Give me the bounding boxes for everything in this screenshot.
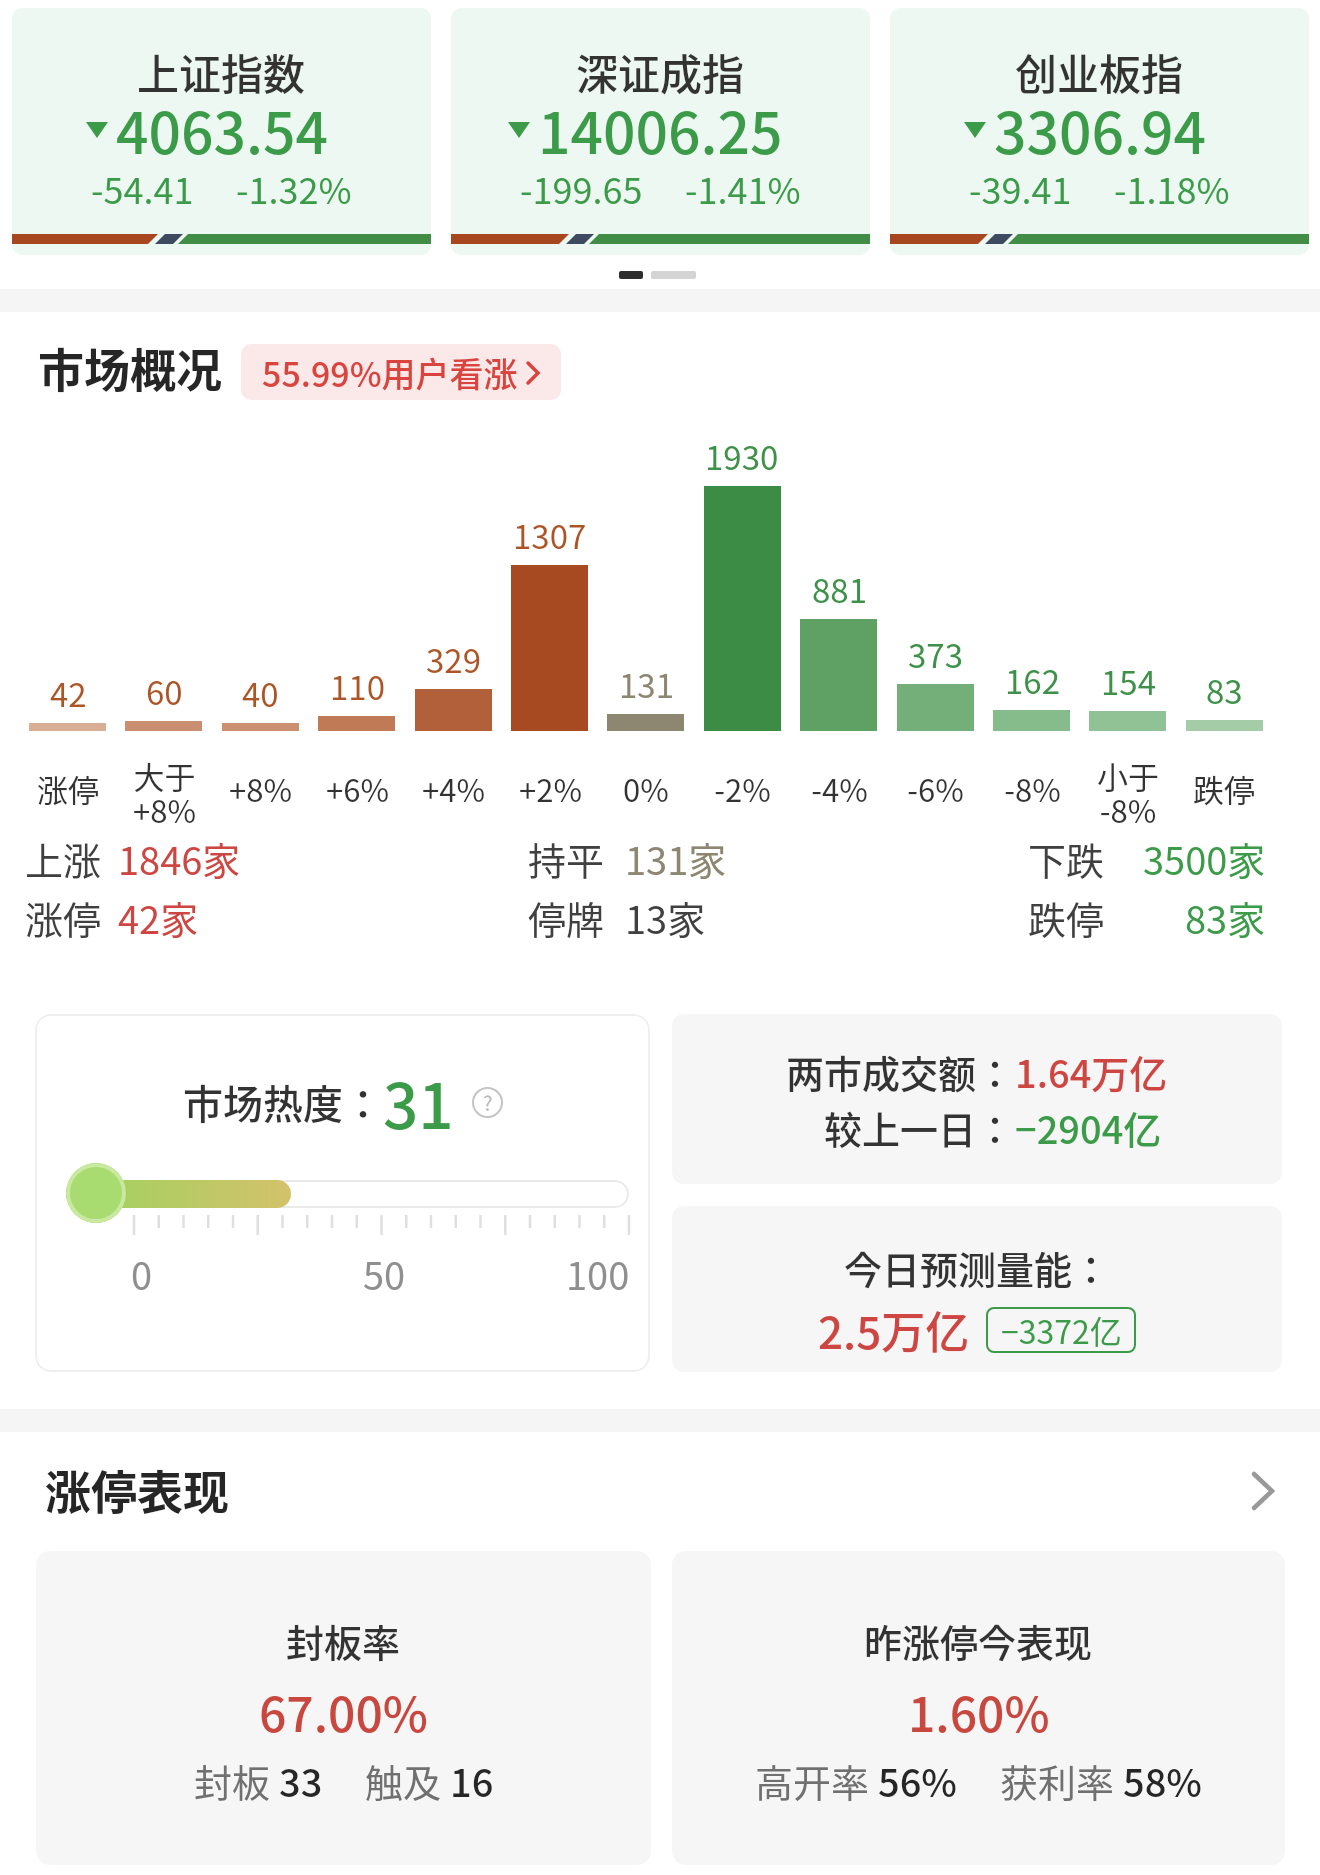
staticText: 跌停	[1028, 890, 1105, 945]
staticText: 0%	[623, 766, 669, 811]
staticText: 3500家	[1143, 831, 1266, 886]
staticText: 封板	[194, 1753, 279, 1808]
staticText: 上涨	[25, 831, 102, 886]
staticText: 13家	[625, 890, 706, 945]
staticText: 373	[908, 630, 963, 678]
staticText: 40	[242, 669, 279, 717]
staticText: 83家	[1185, 890, 1266, 945]
staticText: 封板率	[286, 1613, 401, 1668]
staticText: 162	[1005, 656, 1060, 704]
staticText: 42	[50, 669, 87, 717]
staticText: 停牌	[528, 890, 605, 945]
staticText: 60	[146, 667, 183, 715]
staticText: 高开率	[755, 1753, 878, 1808]
button[interactable]: 封板率	[36, 1551, 651, 1865]
staticText: 131	[619, 660, 674, 708]
staticText: 881	[812, 565, 867, 613]
button[interactable]: 深证成指	[451, 8, 870, 255]
staticText: 154	[1101, 657, 1156, 705]
staticText: 83	[1206, 666, 1243, 714]
staticText: 55.99%用户看涨	[262, 348, 518, 397]
staticText: 获利率	[1000, 1753, 1123, 1808]
staticText: 0	[131, 1246, 153, 1301]
staticText: 3306.94	[994, 88, 1206, 171]
staticText: 31	[383, 1057, 454, 1147]
staticText: 涨停	[25, 890, 102, 945]
staticText: 110	[330, 662, 385, 710]
staticText: 两市成交额：	[786, 1044, 1015, 1099]
staticText: +2%	[519, 766, 582, 811]
staticText: 市场概况	[38, 334, 222, 400]
staticText: -1.18%	[1114, 162, 1230, 214]
button[interactable]	[1252, 1472, 1274, 1510]
staticText: 14006.25	[538, 88, 783, 171]
staticText: -2%	[714, 766, 771, 811]
staticText: 小于 -8%	[1097, 753, 1159, 823]
staticText: 跌停	[1193, 766, 1255, 811]
staticText: -8%	[1004, 766, 1061, 811]
staticText: +6%	[326, 766, 389, 811]
staticText: 56%	[878, 1753, 958, 1808]
staticText: 触及	[365, 1753, 450, 1808]
staticText: 1930	[705, 432, 779, 480]
button[interactable]: 今日预测量能：	[672, 1206, 1282, 1372]
staticText: 下跌	[1028, 831, 1105, 886]
button[interactable]: 上证指数	[12, 8, 431, 255]
staticText: 329	[426, 635, 481, 683]
staticText: 上证指数	[137, 41, 306, 102]
staticText: -4%	[811, 766, 868, 811]
staticText: 50	[363, 1246, 406, 1301]
staticText: 昨涨停今表现	[864, 1613, 1093, 1668]
staticText: 1.64万亿	[1015, 1044, 1168, 1099]
staticText: 较上一日：	[824, 1100, 1015, 1155]
button[interactable]: 55.99%用户看涨	[241, 344, 561, 400]
staticText: 131家	[625, 831, 727, 886]
staticText: ?	[483, 1088, 493, 1117]
staticText: 持平	[528, 831, 605, 886]
staticText: 1307	[513, 511, 587, 559]
staticText: -6%	[907, 766, 964, 811]
staticText: 市场热度：	[183, 1073, 383, 1131]
staticText: 100	[566, 1246, 630, 1301]
staticText: -54.41	[91, 162, 194, 214]
staticText: -1.32%	[236, 162, 352, 214]
staticText: +8%	[229, 766, 292, 811]
staticText: +4%	[422, 766, 485, 811]
staticText: -1.41%	[685, 162, 801, 214]
button[interactable]: 创业板指	[890, 8, 1309, 255]
staticText: 16	[450, 1753, 494, 1808]
staticText: 大于 +8%	[133, 753, 196, 823]
staticText: -39.41	[969, 162, 1072, 214]
staticText: 2.5万亿	[818, 1298, 970, 1362]
staticText: 4063.54	[116, 88, 328, 171]
staticText: 涨停	[37, 766, 99, 811]
staticText: -199.65	[520, 162, 643, 214]
button[interactable]: 两市成交额：	[672, 1014, 1282, 1184]
button[interactable]: 市场热度：	[35, 1014, 650, 1372]
staticText: 1846家	[118, 831, 241, 886]
staticText: 今日预测量能：	[844, 1240, 1111, 1295]
staticText: 42家	[118, 890, 199, 945]
staticText: 深证成指	[576, 41, 745, 102]
staticText: 涨停表现	[45, 1456, 229, 1522]
staticText: −3372亿	[1001, 1307, 1122, 1353]
staticText: 58%	[1123, 1753, 1203, 1808]
staticText: 1.60%	[908, 1676, 1050, 1746]
staticText: −2904亿	[1015, 1100, 1162, 1155]
staticText: 33	[279, 1753, 323, 1808]
button[interactable]: 昨涨停今表现	[672, 1551, 1285, 1865]
staticText: 67.00%	[259, 1676, 428, 1746]
staticText: 创业板指	[1015, 41, 1184, 102]
